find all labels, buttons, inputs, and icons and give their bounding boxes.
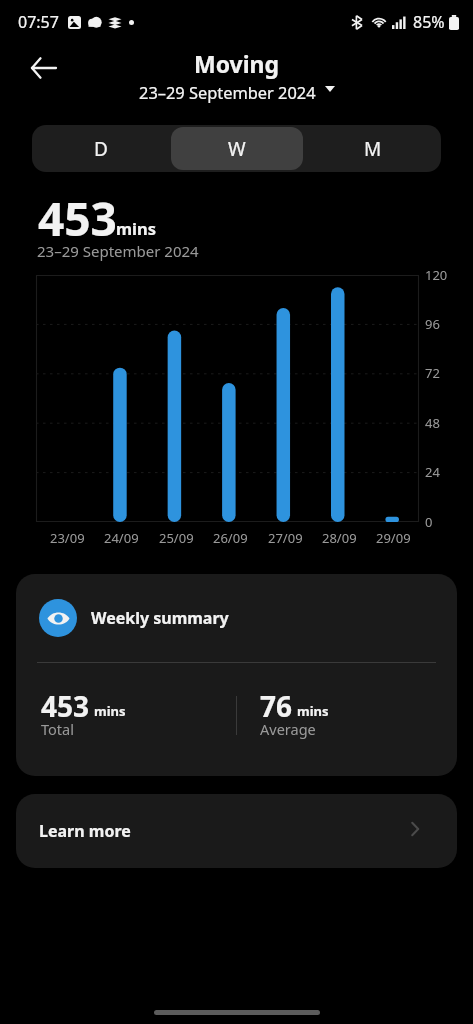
staticText: 25/09	[159, 529, 194, 547]
button[interactable]: W	[171, 127, 303, 170]
staticText: 27/09	[268, 529, 303, 547]
staticText: M	[364, 136, 382, 162]
staticText: mins	[94, 702, 126, 720]
button[interactable]: Learn more	[16, 794, 457, 868]
staticText: Average	[260, 719, 316, 739]
button[interactable]: Back	[21, 46, 65, 90]
staticText: 29/09	[376, 529, 411, 547]
staticText: 120	[425, 266, 448, 284]
staticText: 23–29 September 2024	[37, 241, 199, 261]
button[interactable]: M	[307, 127, 439, 170]
staticText: 96	[425, 315, 440, 333]
staticText: Total	[41, 719, 74, 739]
staticText: 28/09	[322, 529, 357, 547]
staticText: 85%	[413, 11, 445, 33]
staticText: D	[94, 136, 108, 162]
staticText: 453	[38, 187, 117, 250]
staticText: W	[228, 136, 246, 162]
staticText: 23–29 September 2024	[139, 81, 316, 103]
button[interactable]: D	[34, 127, 167, 170]
staticText: mins	[297, 702, 329, 720]
staticText: Weekly summary	[91, 607, 229, 629]
staticText: 72	[425, 364, 440, 382]
staticText: 76	[260, 687, 293, 725]
staticText: 48	[425, 414, 440, 432]
staticText: Learn more	[39, 820, 131, 842]
staticText: 23/09	[50, 529, 85, 547]
staticText: 24/09	[104, 529, 139, 547]
button[interactable]: 23–29 September 2024	[135, 79, 339, 105]
staticText: mins	[116, 217, 157, 239]
staticText: 26/09	[213, 529, 248, 547]
staticText: 07:57	[18, 11, 59, 33]
staticText: 453	[41, 687, 90, 725]
staticText: 0	[425, 513, 433, 531]
staticText: 24	[425, 463, 440, 481]
staticText: Moving	[194, 48, 280, 79]
